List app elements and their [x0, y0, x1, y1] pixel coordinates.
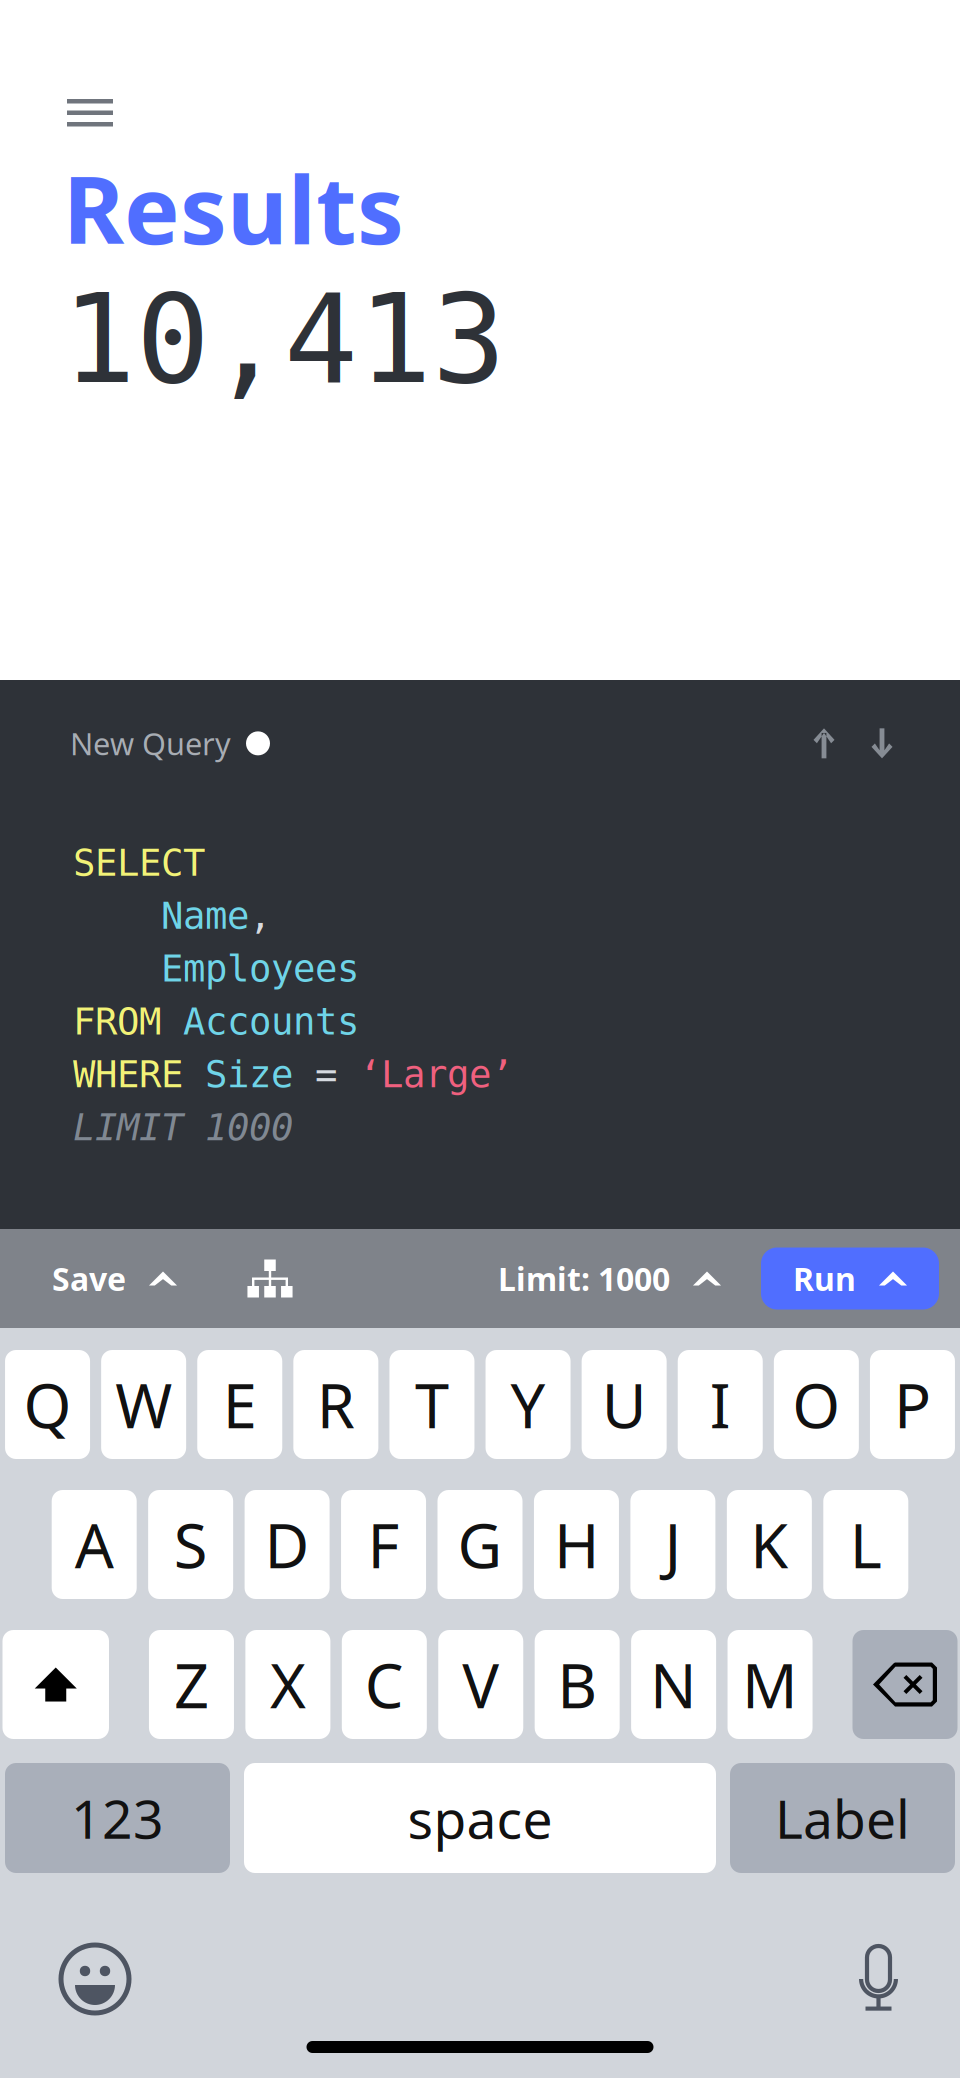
button[interactable]: Shift: [2, 1630, 109, 1739]
staticText: FROM: [73, 1000, 161, 1043]
staticText: New Query: [70, 723, 231, 764]
button[interactable]: X: [245, 1630, 330, 1739]
button[interactable]: Delete: [852, 1630, 957, 1739]
button[interactable]: Run: [761, 1247, 939, 1309]
button[interactable]: Limit: 1000: [484, 1239, 735, 1318]
button[interactable]: O: [774, 1350, 859, 1459]
button[interactable]: U: [582, 1350, 667, 1459]
staticText: D: [265, 1504, 310, 1585]
button[interactable]: N: [631, 1630, 716, 1739]
button[interactable]: T: [389, 1350, 474, 1459]
staticText: 123: [71, 1783, 164, 1853]
staticText: =: [293, 1053, 337, 1096]
staticText: W: [115, 1364, 172, 1445]
staticText: M: [742, 1644, 798, 1725]
staticText: Results: [63, 146, 404, 270]
staticText: Name: [73, 895, 249, 937]
staticText: Size: [183, 1053, 293, 1096]
button[interactable]: R: [293, 1350, 378, 1459]
staticText: R: [317, 1364, 355, 1445]
button[interactable]: G: [437, 1490, 522, 1599]
button[interactable]: S: [148, 1490, 233, 1599]
button[interactable]: Y: [486, 1350, 571, 1459]
button[interactable]: space: [244, 1763, 716, 1873]
button[interactable]: 123: [5, 1763, 230, 1873]
staticText: E: [223, 1364, 257, 1445]
staticText: space: [407, 1783, 552, 1853]
button[interactable]: L: [823, 1490, 908, 1599]
button[interactable]: C: [342, 1630, 427, 1739]
staticText: Y: [511, 1364, 546, 1445]
staticText: X: [270, 1644, 306, 1725]
staticText: 10,413: [62, 270, 506, 409]
staticText: K: [750, 1504, 788, 1585]
staticText: ,: [249, 895, 271, 937]
staticText: Save: [52, 1257, 126, 1300]
staticText: F: [368, 1504, 400, 1585]
staticText: Z: [174, 1644, 209, 1725]
staticText: A: [75, 1504, 114, 1585]
staticText: Limit: 1000: [498, 1257, 670, 1300]
button[interactable]: M: [727, 1630, 812, 1739]
button[interactable]: Label: [730, 1763, 955, 1873]
button[interactable]: Emoji: [61, 1945, 129, 2013]
button[interactable]: Dictation: [859, 1946, 898, 2012]
staticText: L: [850, 1504, 882, 1585]
button[interactable]: I: [678, 1350, 763, 1459]
staticText: O: [792, 1364, 840, 1445]
button[interactable]: B: [535, 1630, 620, 1739]
button[interactable]: Move down: [868, 728, 896, 758]
staticText: S: [174, 1504, 208, 1585]
button[interactable]: Save: [38, 1239, 191, 1318]
button[interactable]: A: [52, 1490, 137, 1599]
staticText: T: [415, 1364, 449, 1445]
staticText: C: [365, 1644, 404, 1725]
staticText: J: [664, 1504, 681, 1585]
button[interactable]: D: [245, 1490, 330, 1599]
staticText: I: [710, 1364, 731, 1445]
button[interactable]: K: [727, 1490, 812, 1599]
staticText: SELECT: [73, 842, 205, 884]
button[interactable]: V: [438, 1630, 523, 1739]
staticText: H: [554, 1504, 599, 1585]
button[interactable]: Schema: [233, 1245, 307, 1311]
staticText: G: [457, 1504, 502, 1585]
staticText: V: [462, 1644, 499, 1725]
button[interactable]: F: [341, 1490, 426, 1599]
button[interactable]: Q: [5, 1350, 90, 1459]
button[interactable]: Menu: [0, 0, 143, 140]
button[interactable]: E: [197, 1350, 282, 1459]
button[interactable]: P: [870, 1350, 955, 1459]
button[interactable]: J: [630, 1490, 715, 1599]
staticText: ‘Large’: [337, 1053, 513, 1096]
button[interactable]: W: [101, 1350, 186, 1459]
button[interactable]: Z: [149, 1630, 234, 1739]
staticText: Run: [793, 1257, 856, 1300]
staticText: LIMIT 1000: [73, 1106, 293, 1148]
staticText: P: [894, 1364, 931, 1445]
staticText: Employees: [73, 947, 359, 990]
staticText: U: [602, 1364, 647, 1445]
button[interactable]: Move up: [810, 728, 838, 758]
staticText: Label: [775, 1783, 910, 1853]
staticText: N: [650, 1644, 697, 1725]
staticText: WHERE: [73, 1053, 183, 1096]
staticText: Accounts: [161, 1000, 359, 1043]
staticText: Q: [24, 1364, 72, 1445]
button[interactable]: H: [534, 1490, 619, 1599]
staticText: B: [557, 1644, 597, 1725]
